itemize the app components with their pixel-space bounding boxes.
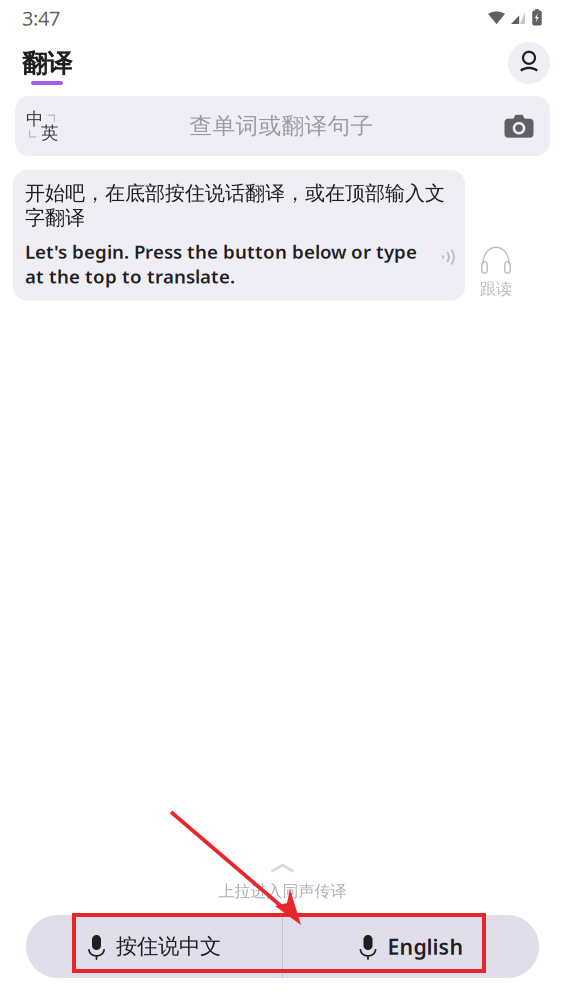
- staticText: 开始吧，在底部按住说话翻译，或在顶部输入文字翻译: [25, 181, 445, 230]
- staticText: English: [387, 932, 463, 961]
- button[interactable]: Account: [508, 47, 550, 89]
- button[interactable]: 中: [15, 96, 550, 156]
- staticText: 查单词或翻译句子: [189, 112, 373, 140]
- staticText: 翻译: [22, 48, 72, 79]
- staticText: 按住说中文: [116, 933, 221, 960]
- staticText: 上拉进入同声传译: [218, 881, 346, 901]
- staticText: 英: [41, 122, 58, 144]
- staticText: Let's begin. Press the button below or t…: [25, 239, 417, 289]
- staticText: 跟读: [480, 279, 512, 299]
- button[interactable]: Read aloud: [465, 170, 527, 299]
- staticText: 3:47: [22, 5, 60, 31]
- button[interactable]: 按住说中文: [26, 915, 282, 978]
- button[interactable]: Play translation: [437, 244, 463, 270]
- button[interactable]: English: [283, 915, 539, 978]
- staticText: 中: [26, 108, 43, 130]
